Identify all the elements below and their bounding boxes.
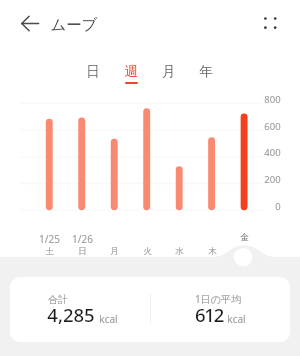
staticText: 週	[124, 63, 138, 80]
staticText: 木	[208, 246, 217, 257]
button[interactable]: Back	[9, 5, 45, 41]
button[interactable]: 日	[76, 57, 110, 86]
button[interactable]: More options	[255, 7, 285, 37]
staticText: 4,285	[47, 302, 95, 327]
staticText: 1/26	[72, 232, 93, 244]
staticText: ムーブ	[50, 15, 98, 35]
staticText: 日	[78, 246, 87, 257]
staticText: 金	[240, 232, 249, 243]
staticText: kcal	[227, 312, 246, 326]
staticText: 水	[175, 246, 184, 257]
staticText: 600	[264, 120, 281, 132]
staticText: 1/25	[39, 232, 60, 244]
staticText: 400	[264, 146, 281, 158]
button[interactable]: 月	[152, 57, 186, 86]
staticText: 200	[264, 173, 281, 185]
button[interactable]: 週	[114, 57, 148, 86]
staticText: 0	[275, 200, 281, 212]
staticText: 年	[199, 63, 213, 80]
staticText: 月	[162, 63, 176, 80]
staticText: 月	[110, 246, 119, 257]
button[interactable]: 年	[189, 57, 223, 86]
staticText: 火	[143, 246, 152, 257]
staticText: 日	[86, 63, 100, 80]
staticText: kcal	[99, 312, 118, 326]
staticText: 土	[45, 246, 54, 257]
staticText: 612	[195, 302, 223, 327]
staticText: 1日の平均	[195, 292, 241, 306]
button[interactable]: 合計	[10, 277, 290, 342]
staticText: 合計	[48, 293, 68, 306]
staticText: 800	[264, 93, 281, 105]
